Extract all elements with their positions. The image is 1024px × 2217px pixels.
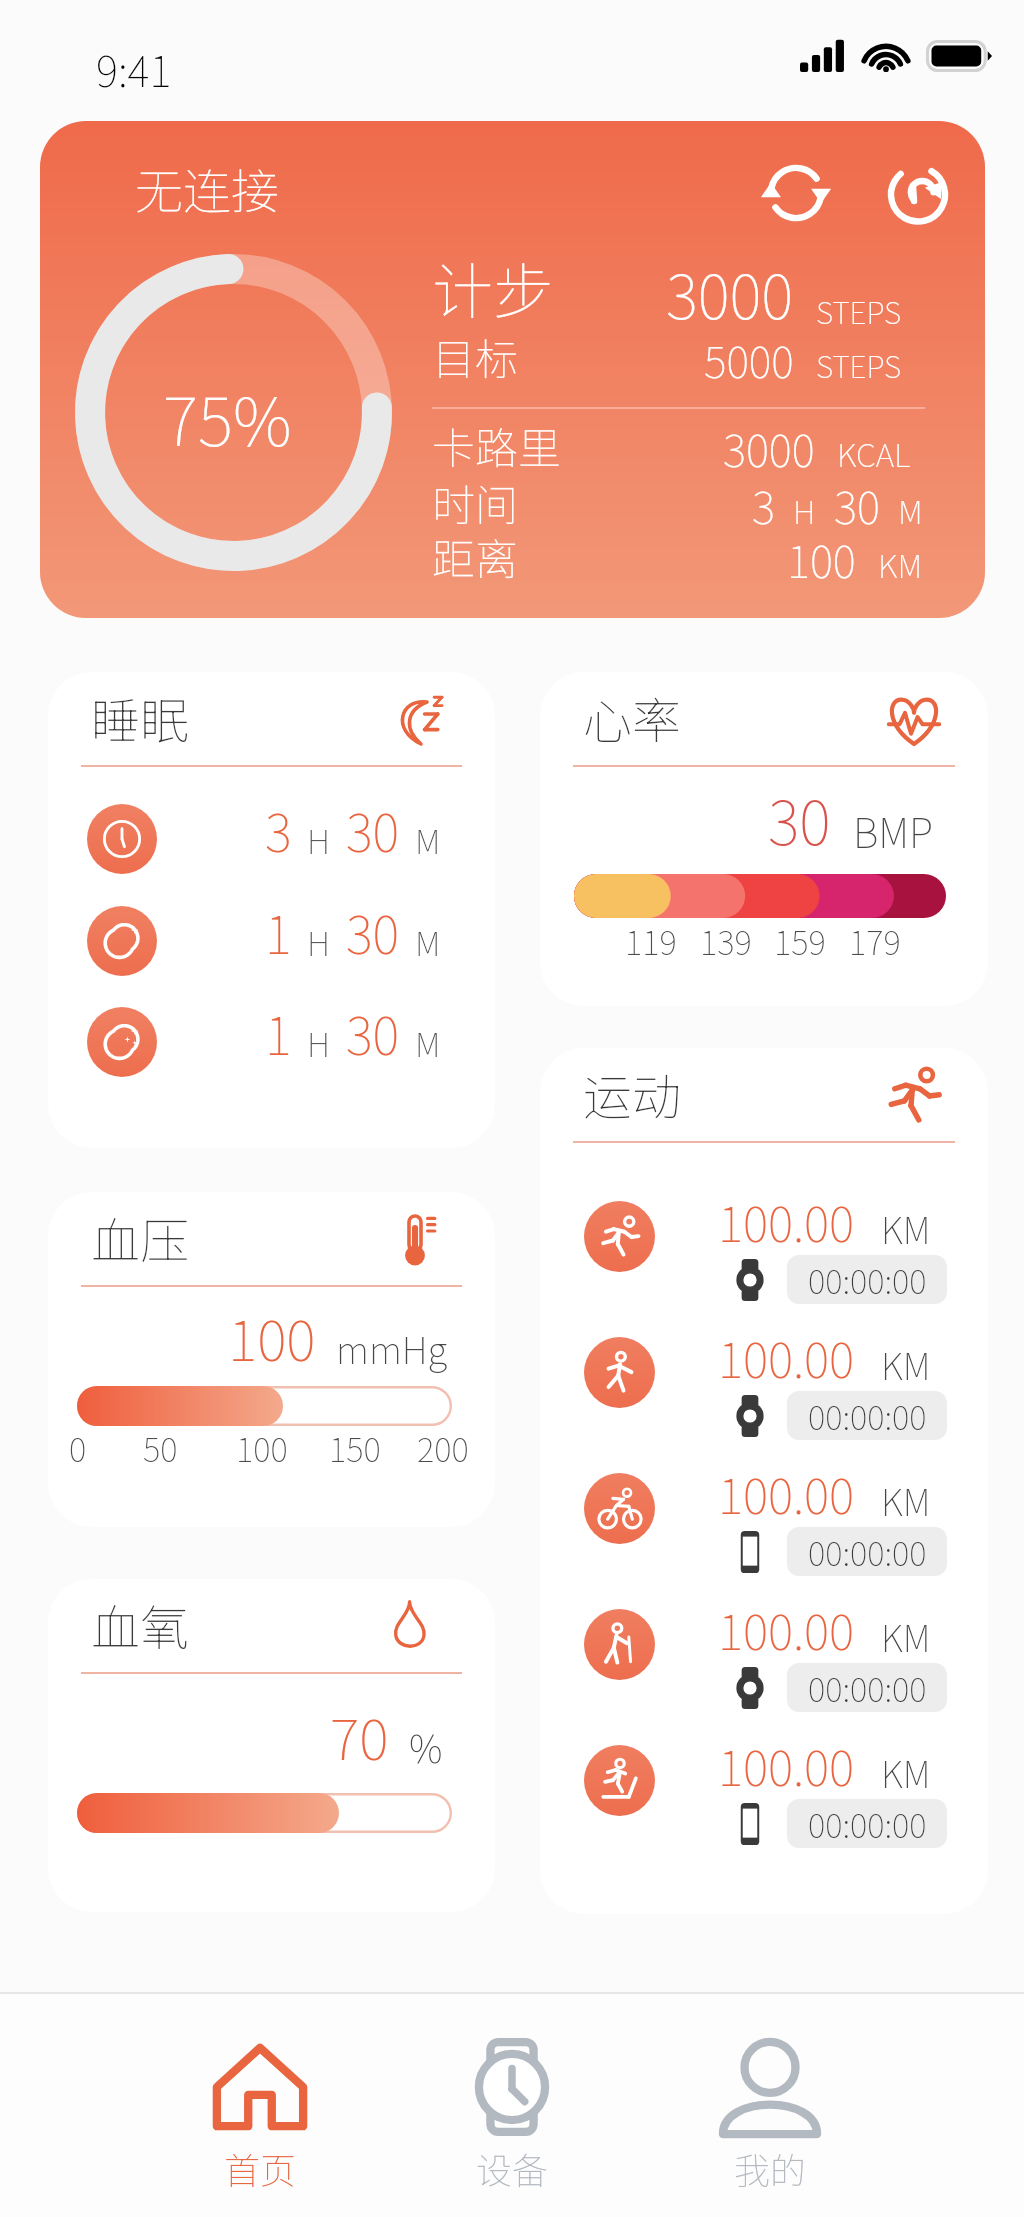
staticText: 卡路里 <box>432 414 561 476</box>
staticText: 9:41 <box>96 38 172 99</box>
staticText: 3 <box>265 793 292 867</box>
staticText: KM <box>881 1610 931 1662</box>
staticText: 5000 <box>704 328 794 390</box>
staticText: 30 <box>834 473 880 537</box>
staticText: M <box>898 487 923 533</box>
staticText: 00:00:00 <box>808 1256 927 1304</box>
staticText: 1 <box>265 895 292 969</box>
staticText: % <box>409 1719 443 1774</box>
staticText: STEPS <box>816 289 902 332</box>
staticText: 心率 <box>583 682 682 753</box>
staticText: KM <box>881 1338 931 1390</box>
staticText: 3000 <box>666 248 794 336</box>
staticText: 139 <box>700 917 752 961</box>
staticText: 首页 <box>224 2142 297 2194</box>
button[interactable]: 设备 <box>417 1998 607 2213</box>
staticText: 100.00 <box>718 1458 855 1528</box>
staticText: 时间 <box>432 471 518 533</box>
staticText: 30 <box>346 895 400 969</box>
staticText: 00:00:00 <box>808 1664 927 1712</box>
staticText: 100 <box>787 527 856 591</box>
staticText: H <box>793 487 816 533</box>
staticText: 0 <box>69 1424 87 1468</box>
staticText: KM <box>881 1202 931 1254</box>
staticText: 75% <box>163 368 292 465</box>
staticText: 00:00:00 <box>808 1392 927 1440</box>
staticText: 119 <box>625 917 677 961</box>
button[interactable]: 血氧 <box>48 1579 495 1912</box>
staticText: KM <box>878 541 923 587</box>
staticText: H <box>307 816 331 864</box>
staticText: 30 <box>346 793 400 867</box>
staticText: 50 <box>143 1424 178 1468</box>
staticText: 100.00 <box>718 1594 855 1664</box>
staticText: 100.00 <box>718 1322 855 1392</box>
staticText: M <box>415 918 441 966</box>
staticText: 159 <box>774 917 826 961</box>
staticText: 运动 <box>583 1058 682 1129</box>
staticText: 100 <box>236 1424 288 1468</box>
staticText: 距离 <box>432 525 518 587</box>
staticText: M <box>415 816 441 864</box>
staticText: M <box>415 1019 441 1067</box>
button[interactable]: 睡眠 <box>48 672 495 1148</box>
button[interactable]: Share <box>868 143 968 243</box>
staticText: KCAL <box>837 430 911 476</box>
staticText: 血氧 <box>91 1589 190 1660</box>
staticText: 3000 <box>723 416 815 480</box>
staticText: 无连接 <box>135 153 280 223</box>
staticText: 30 <box>768 775 831 862</box>
staticText: KM <box>881 1746 931 1798</box>
button[interactable]: 首页 <box>165 1998 355 2213</box>
staticText: 计步 <box>432 243 555 331</box>
staticText: 70 <box>330 1695 389 1776</box>
staticText: KM <box>881 1474 931 1526</box>
staticText: 00:00:00 <box>808 1528 927 1576</box>
staticText: 100.00 <box>718 1186 855 1256</box>
staticText: 00:00:00 <box>808 1800 927 1848</box>
staticText: 100 <box>228 1296 316 1377</box>
staticText: STEPS <box>816 343 902 386</box>
staticText: 200 <box>417 1424 469 1468</box>
staticText: 目标 <box>432 325 518 387</box>
staticText: BMP <box>853 802 933 860</box>
staticText: 睡眠 <box>91 682 190 753</box>
staticText: 150 <box>329 1424 381 1468</box>
staticText: 1 <box>265 996 292 1070</box>
staticText: 我的 <box>734 2142 807 2194</box>
staticText: 100.00 <box>718 1730 855 1800</box>
staticText: H <box>307 918 331 966</box>
button[interactable]: 我的 <box>675 1998 865 2213</box>
button[interactable]: Sync <box>746 143 846 243</box>
staticText: 3 <box>752 473 775 537</box>
button[interactable]: 血压 <box>48 1192 495 1527</box>
staticText: mmHg <box>336 1321 448 1375</box>
button[interactable]: 心率 <box>540 672 988 1006</box>
staticText: 30 <box>346 996 400 1070</box>
staticText: 179 <box>849 917 901 961</box>
staticText: 血压 <box>91 1202 190 1273</box>
staticText: H <box>307 1019 331 1067</box>
button[interactable]: 运动 <box>540 1048 988 1914</box>
staticText: 设备 <box>476 2142 549 2194</box>
button[interactable]: 无连接 <box>40 121 985 618</box>
